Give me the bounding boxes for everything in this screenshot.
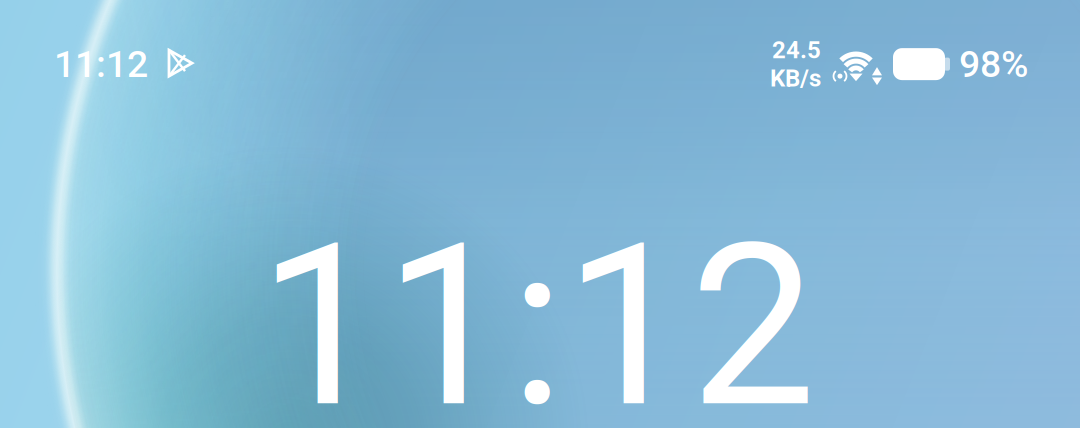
staticText: 11:12 [258, 195, 816, 428]
button[interactable]: Play Store [165, 48, 195, 80]
staticText: 24.5 [772, 36, 821, 64]
staticText: KB/s [770, 64, 821, 92]
staticText: 11:12 [54, 42, 148, 86]
staticText: 98% [959, 42, 1028, 86]
